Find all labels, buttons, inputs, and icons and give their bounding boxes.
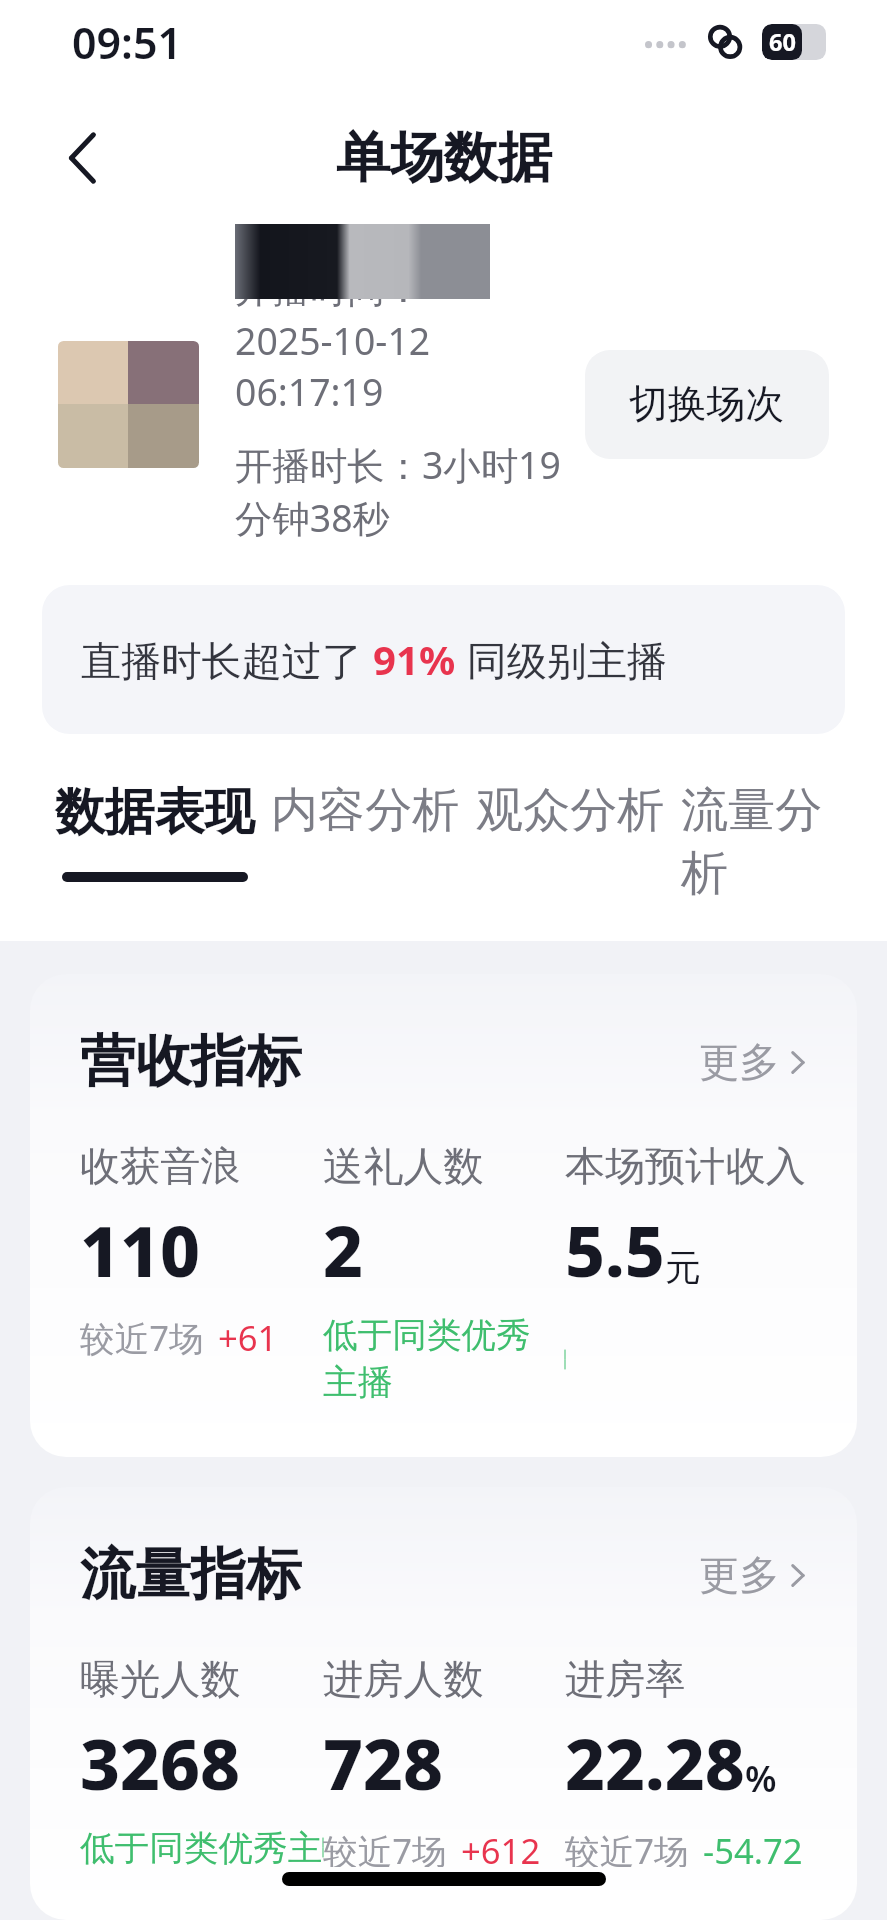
staticText: 收获音浪 [80, 1141, 241, 1192]
staticText: 开播时长：3小时19分钟38秒 [235, 439, 563, 543]
button[interactable]: 流量指标 [30, 1487, 857, 1920]
staticText: 同级别主播 [456, 632, 668, 687]
staticText: 91% [373, 632, 456, 687]
staticText: 送礼人数 [323, 1141, 484, 1192]
staticText: 5.5 [565, 1203, 665, 1297]
staticText: 营收指标 [80, 1027, 302, 1097]
staticText: 更多 [699, 1037, 780, 1088]
staticText: 直播时长超过了 [81, 632, 373, 687]
button[interactable]: 低于同类优秀主播 [80, 1827, 323, 1867]
button[interactable]: Live cover [58, 341, 199, 468]
staticText: 观众分析 [476, 781, 665, 840]
staticText: 进房率 [565, 1654, 686, 1705]
staticText: 流量指标 [80, 1540, 302, 1610]
staticText: 较近7场 [565, 1827, 689, 1867]
staticText: 内容分析 [271, 781, 460, 840]
staticText: 728 [323, 1716, 444, 1810]
staticText: 流量分析 [681, 781, 832, 903]
staticText: 22.28 [565, 1716, 745, 1810]
staticText: 数据表现 [55, 781, 255, 844]
staticText: +612 [461, 1827, 541, 1867]
button[interactable]: 观众分析 [468, 781, 673, 878]
staticText: 开播时间：2025-10-12 06:17:19 [235, 266, 563, 417]
staticText: 单场数据 [336, 124, 552, 192]
button[interactable]: 流量分析 [673, 781, 840, 941]
staticText: 较近7场 [323, 1827, 447, 1867]
staticText: 2 [323, 1203, 364, 1297]
button[interactable]: 数据表现 [47, 781, 263, 882]
button[interactable]: 切换场次 [585, 350, 829, 459]
staticText: 3268 [80, 1716, 241, 1810]
staticText: 曝光人数 [80, 1654, 241, 1705]
staticText: -54.72% [703, 1827, 807, 1867]
staticText: 110 [80, 1203, 201, 1297]
staticText: 09:51 [72, 13, 183, 71]
staticText: 低于同类优秀主播 [323, 1314, 565, 1404]
button[interactable]: 直播时长超过了 [42, 585, 845, 734]
staticText: % [745, 1754, 777, 1803]
staticText: 更多 [699, 1550, 780, 1601]
button[interactable]: 更多 [699, 1037, 807, 1088]
staticText: 较近7场 [80, 1314, 204, 1361]
staticText: 元 [665, 1245, 701, 1290]
staticText: 进房人数 [323, 1654, 484, 1705]
button[interactable]: 营收指标 [30, 974, 857, 1457]
staticText: 本场预计收入 [565, 1141, 806, 1192]
button[interactable]: 更多 [699, 1550, 807, 1601]
staticText: +61 [218, 1314, 278, 1361]
staticText: 切换场次 [629, 380, 785, 429]
button[interactable]: Back [22, 97, 144, 219]
button[interactable]: 内容分析 [263, 781, 468, 878]
button[interactable]: 低于同类优秀主播 [323, 1314, 565, 1404]
staticText: 60 [769, 26, 796, 58]
staticText: 低于同类优秀主播 [80, 1827, 323, 1867]
